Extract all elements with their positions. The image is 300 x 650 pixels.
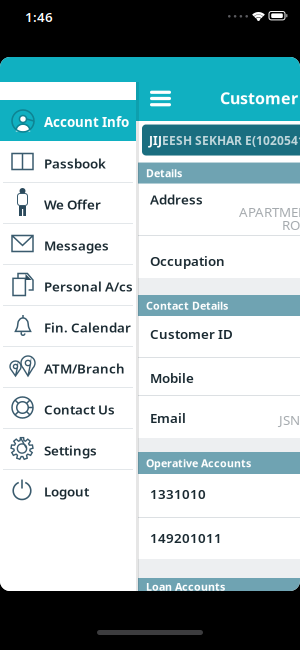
button[interactable]: Contact Us [0,387,136,428]
staticText: Personal A/cs [44,277,133,295]
staticText: Settings [44,441,97,459]
staticText: Occupation [150,252,225,270]
staticText: Loan Accounts [146,579,225,594]
staticText: Contact Details [146,298,228,313]
button[interactable]: Settings [0,428,136,469]
button[interactable]: Passbook [0,141,136,182]
staticText: EESH SEKHAR E(1020541 [162,132,300,148]
staticText: ROAD, [282,216,300,234]
staticText: 1331010 [150,485,206,503]
staticText: Fin. Calendar [44,318,131,336]
staticText: JSNAIR [279,411,300,429]
staticText: JIJ [149,132,162,148]
button[interactable]: Messages [0,223,136,264]
staticText: APARTMENTS [239,203,300,221]
staticText: Address [150,190,203,208]
button[interactable]: JIJ [142,124,300,155]
button[interactable]: Fin. Calendar [0,305,136,346]
staticText: Details [146,166,182,180]
staticText: ATM/Branch [44,359,125,377]
staticText: We Offer [44,195,101,213]
button[interactable]: Personal A/cs [0,264,136,305]
staticText: 149201011 [150,529,222,547]
staticText: Messages [44,236,109,254]
staticText: Customer Profile [220,87,300,109]
staticText: Customer ID [150,325,233,343]
button[interactable]: Account Info [0,100,136,141]
staticText: Passbook [44,154,106,172]
staticText: 1:46 [25,8,53,26]
button[interactable]: We Offer [0,182,136,223]
button[interactable]: Menu [148,88,173,108]
button[interactable]: Logout [0,469,136,510]
staticText: Email [150,409,186,427]
staticText: Operative Accounts [146,456,251,470]
staticText: Account Info [44,113,129,131]
staticText: Mobile [150,369,194,387]
button[interactable]: ATM/Branch [0,346,136,387]
staticText: Logout [44,482,89,500]
staticText: Contact Us [44,400,115,418]
